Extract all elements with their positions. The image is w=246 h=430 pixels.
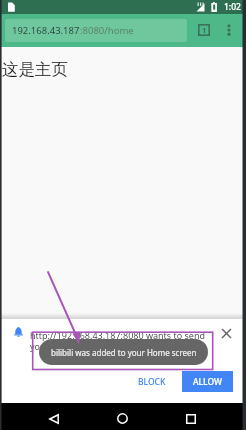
button[interactable]: Tabs <box>198 24 210 36</box>
button[interactable]: Recents <box>181 409 201 429</box>
staticText: bilibili was added to your Home screen <box>51 347 197 358</box>
staticText: BLOCK <box>138 376 166 388</box>
button[interactable]: Home <box>112 408 132 428</box>
button[interactable]: 192.168.43.187 <box>5 19 187 42</box>
button[interactable]: More options <box>223 20 235 40</box>
staticText: :8080/home <box>80 24 134 37</box>
button[interactable]: ALLOW <box>182 371 233 392</box>
button[interactable]: BLOCK <box>132 371 172 392</box>
button[interactable]: Back <box>44 409 64 429</box>
staticText: ALLOW <box>193 376 223 388</box>
staticText: 1:02 <box>224 1 241 13</box>
staticText: http://192.168.43.187:8080 wants to send <box>30 329 206 341</box>
staticText: 这是主页 <box>2 59 68 80</box>
staticText: 1 <box>202 25 207 35</box>
staticText: you notifications <box>30 340 101 352</box>
button[interactable]: Close <box>218 325 235 342</box>
staticText: 192.168.43.187 <box>12 24 80 37</box>
